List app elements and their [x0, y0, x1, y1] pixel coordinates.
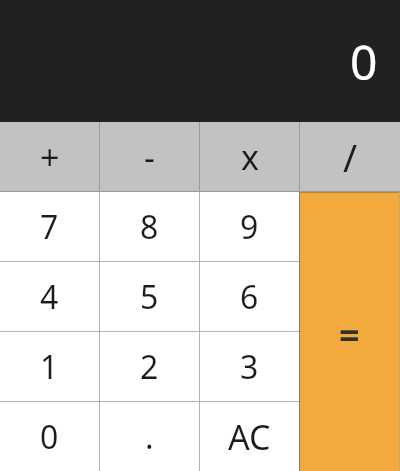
- staticText: /: [343, 131, 358, 183]
- staticText: 9: [240, 205, 259, 249]
- staticText: 2: [140, 345, 159, 389]
- button[interactable]: AC: [200, 402, 299, 471]
- staticText: .: [145, 415, 154, 459]
- button[interactable]: x: [200, 122, 299, 191]
- staticText: 3: [240, 345, 259, 389]
- button[interactable]: +: [0, 122, 99, 191]
- button[interactable]: =: [299, 192, 400, 471]
- staticText: x: [241, 134, 259, 180]
- button[interactable]: 3: [200, 332, 299, 401]
- staticText: AC: [228, 414, 271, 460]
- button[interactable]: 8: [100, 192, 199, 261]
- button[interactable]: 1: [0, 332, 99, 401]
- button[interactable]: 0: [0, 402, 99, 471]
- button[interactable]: .: [100, 402, 199, 471]
- button[interactable]: /: [300, 122, 400, 191]
- button[interactable]: 4: [0, 262, 99, 331]
- staticText: 0: [40, 415, 59, 459]
- staticText: 7: [40, 205, 59, 249]
- staticText: 0: [350, 29, 378, 94]
- staticText: 1: [40, 345, 59, 389]
- button[interactable]: 2: [100, 332, 199, 401]
- staticText: +: [40, 134, 60, 180]
- button[interactable]: -: [100, 122, 199, 191]
- staticText: 8: [140, 205, 159, 249]
- staticText: 6: [240, 275, 259, 319]
- staticText: -: [144, 134, 155, 180]
- button[interactable]: 9: [200, 192, 299, 261]
- staticText: =: [339, 310, 360, 359]
- button[interactable]: 6: [200, 262, 299, 331]
- staticText: 5: [140, 275, 159, 319]
- button[interactable]: 7: [0, 192, 99, 261]
- button[interactable]: 5: [100, 262, 199, 331]
- staticText: 4: [40, 275, 59, 319]
